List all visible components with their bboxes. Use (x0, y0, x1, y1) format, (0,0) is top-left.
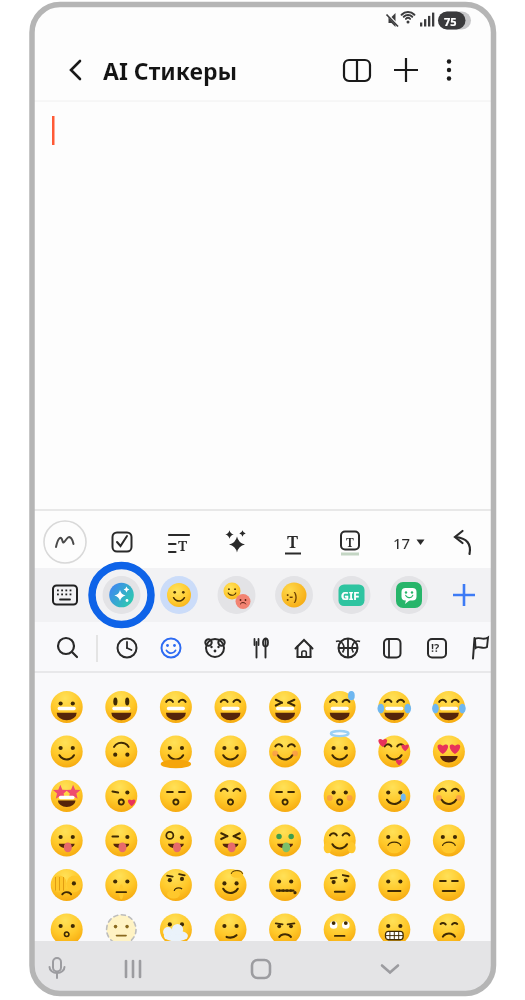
staticText: T (178, 536, 188, 555)
staticText: !? (431, 640, 440, 655)
staticText: :-) (286, 588, 298, 604)
staticText: 75 (444, 14, 457, 29)
staticText: AI Стикеры (103, 55, 238, 86)
staticText: T (346, 534, 354, 550)
staticText: T (287, 530, 299, 553)
staticText: GIF (341, 588, 360, 603)
staticText: 17 (393, 533, 411, 553)
